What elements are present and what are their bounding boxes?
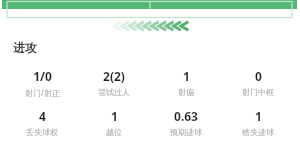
staticText: 0 <box>255 68 262 84</box>
button[interactable]: 进攻 <box>13 40 300 55</box>
staticText: 1 <box>255 108 262 124</box>
staticText: 射偏 <box>178 87 194 97</box>
staticText: 丢失球权 <box>26 127 58 137</box>
staticText: 2(2) <box>103 68 125 84</box>
staticText: 0.63 <box>174 108 198 124</box>
staticText: 4 <box>39 108 46 124</box>
button[interactable]: 1 <box>106 107 122 138</box>
button[interactable]: 2(2) <box>98 67 130 98</box>
button[interactable]: 0.63 <box>170 107 202 138</box>
button[interactable]: 1/0 <box>25 67 60 99</box>
staticText: 射门中框 <box>242 87 274 97</box>
staticText: 1 <box>183 68 190 84</box>
staticText: 射门/射正 <box>25 87 60 98</box>
staticText: 1 <box>111 108 118 124</box>
button[interactable]: 1 <box>242 107 274 138</box>
other: Attack direction <box>0 20 300 32</box>
staticText: 1/0 <box>33 68 52 84</box>
staticText: 错失进球 <box>242 127 274 137</box>
staticText: 进攻 <box>13 40 37 55</box>
button[interactable]: 4 <box>26 107 58 138</box>
staticText: 尝试过人 <box>98 87 130 97</box>
staticText: 越位 <box>106 127 122 137</box>
staticText: 预期进球 <box>170 127 202 137</box>
button[interactable]: 1 <box>178 67 194 98</box>
button[interactable]: 0 <box>242 67 274 98</box>
